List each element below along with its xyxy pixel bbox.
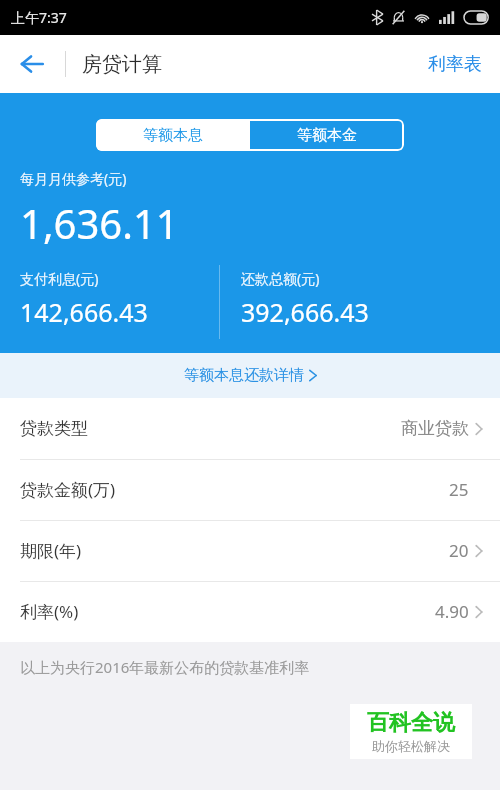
button[interactable]: 利率(%) (0, 581, 500, 642)
staticText: 等额本息还款详情 (184, 366, 304, 385)
staticText: 4.90 (435, 600, 469, 623)
button[interactable]: 利率表 (410, 35, 500, 93)
staticText: 每月月供参考(元) (20, 169, 127, 188)
button[interactable]: 等额本息 (96, 119, 250, 151)
staticText: 贷款金额(万) (20, 478, 116, 501)
staticText: 1,636.11 (20, 196, 179, 250)
staticText: 贷款类型 (20, 418, 88, 439)
button[interactable]: 等额本金 (250, 119, 404, 151)
staticText: 百科全说 (367, 709, 455, 737)
staticText: 25 (449, 478, 469, 501)
button[interactable]: 贷款金额(万) (0, 459, 500, 520)
button[interactable]: Back (6, 38, 58, 90)
staticText: 等额本息 (143, 126, 203, 145)
staticText: 商业贷款 (401, 418, 469, 439)
staticText: 142,666.43 (20, 295, 148, 329)
staticText: 20 (449, 539, 469, 562)
button[interactable]: 等额本息还款详情 (0, 353, 500, 398)
staticText: 房贷计算 (82, 52, 162, 77)
staticText: 上午7:37 (11, 8, 67, 27)
staticText: 利率表 (428, 53, 482, 76)
staticText: 还款总额(元) (241, 269, 320, 288)
staticText: 利率(%) (20, 600, 79, 623)
staticText: 支付利息(元) (20, 269, 99, 288)
staticText: 392,666.43 (241, 295, 369, 329)
staticText: 助你轻松解决 (372, 738, 450, 754)
staticText: 以上为央行2016年最新公布的贷款基准利率 (20, 657, 310, 677)
button[interactable]: 贷款类型 (0, 398, 500, 459)
staticText: 期限(年) (20, 539, 82, 562)
staticText: 等额本金 (297, 126, 357, 145)
button[interactable]: 期限(年) (0, 520, 500, 581)
